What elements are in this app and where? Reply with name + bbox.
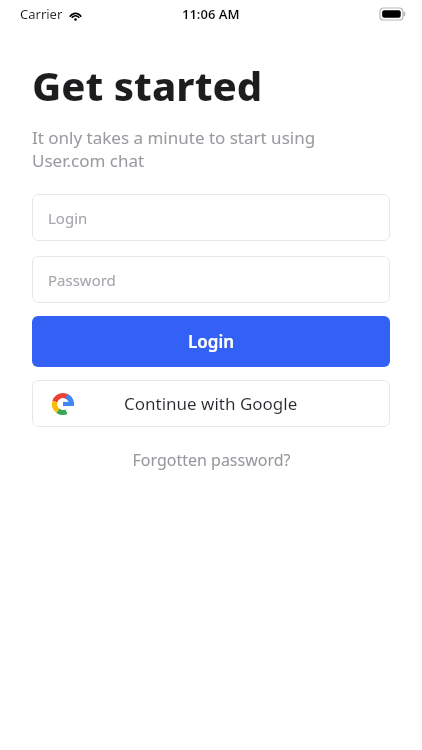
staticText: Login (188, 330, 235, 353)
staticText: Get started (32, 58, 263, 112)
staticText: Password (48, 270, 116, 290)
button[interactable]: Forgotten password? (0, 449, 422, 471)
button[interactable]: Login (32, 316, 390, 367)
button[interactable]: Login (32, 194, 390, 241)
button[interactable]: Google logo (32, 380, 390, 427)
staticText: Carrier (20, 5, 63, 23)
staticText: 11:06 AM (182, 5, 240, 23)
other: Google logo (52, 393, 74, 415)
button[interactable]: Password (32, 256, 390, 303)
staticText: Forgotten password? (132, 449, 291, 471)
staticText: Continue with Google (124, 392, 298, 415)
staticText: It only takes a minute to start using Us… (32, 126, 316, 172)
staticText: Login (48, 208, 88, 228)
